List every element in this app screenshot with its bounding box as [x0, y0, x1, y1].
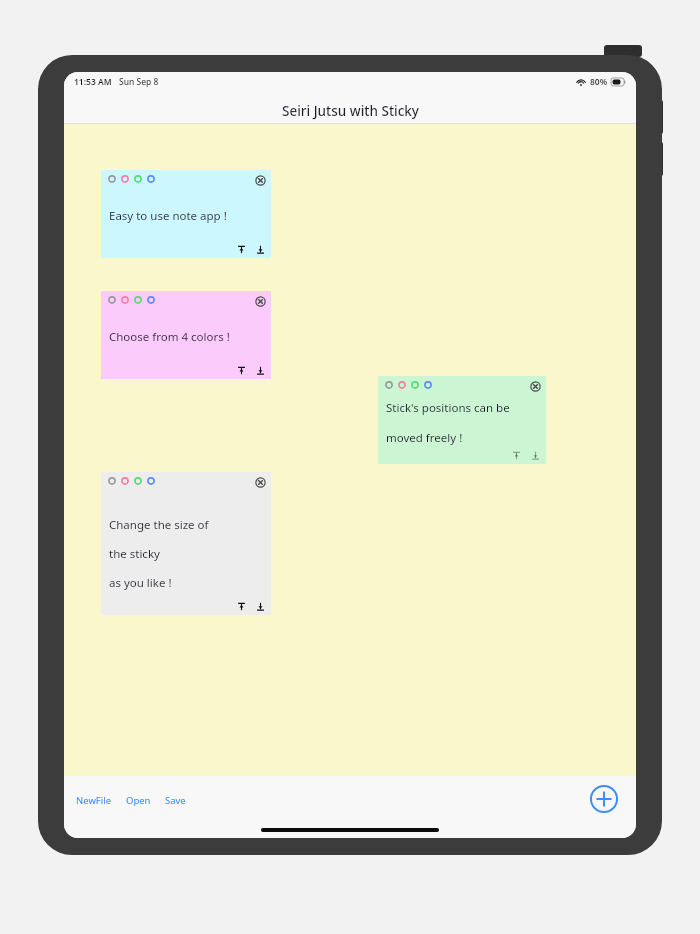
staticText: as you like !	[109, 575, 172, 591]
button[interactable]: Close note	[254, 174, 267, 187]
button[interactable]: Expand note	[255, 244, 266, 255]
staticText: 80%	[590, 76, 608, 88]
button[interactable]: Save	[163, 792, 188, 809]
button[interactable]: Open	[124, 792, 153, 809]
button[interactable]: Expand note	[255, 601, 266, 612]
button[interactable]: Close note	[254, 295, 267, 308]
button[interactable]: Expand note	[255, 365, 266, 376]
staticText: Sun Sep 8	[119, 76, 159, 88]
staticText: Choose from 4 colors !	[109, 329, 230, 345]
staticText: 11:53 AM	[74, 76, 112, 88]
button[interactable]: Close note	[529, 380, 542, 393]
staticText: Open	[126, 794, 151, 807]
button[interactable]: Shrink note	[236, 601, 247, 612]
staticText: the sticky	[109, 546, 160, 562]
button[interactable]: NewFile	[74, 792, 114, 809]
button[interactable]: Close note	[101, 170, 271, 258]
button[interactable]: Shrink note	[511, 450, 522, 461]
staticText: Seiri Jutsu with Sticky	[282, 102, 419, 120]
button[interactable]: Shrink note	[236, 244, 247, 255]
staticText: moved freely !	[386, 430, 463, 446]
staticText: Save	[165, 794, 186, 807]
button[interactable]: Close note	[101, 472, 271, 615]
button[interactable]: Close note	[254, 476, 267, 489]
button[interactable]: Add sticky note	[587, 782, 621, 816]
staticText: Easy to use note app !	[109, 208, 227, 224]
button[interactable]: Close note	[378, 376, 546, 464]
staticText: Stick's positions can be	[386, 400, 510, 416]
button[interactable]: Expand note	[530, 450, 541, 461]
staticText: NewFile	[76, 794, 112, 807]
button[interactable]: Close note	[101, 291, 271, 379]
staticText: Change the size of	[109, 517, 209, 533]
button[interactable]: Shrink note	[236, 365, 247, 376]
